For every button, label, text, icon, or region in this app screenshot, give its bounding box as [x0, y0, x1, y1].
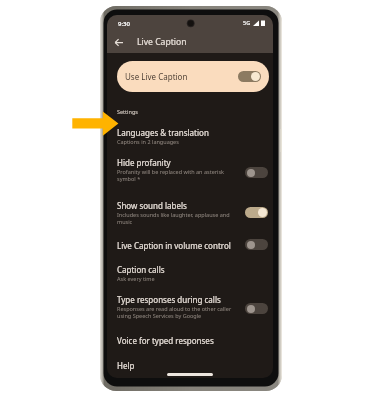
button[interactable]: Languages & translation — [107, 123, 273, 151]
button[interactable]: Type responses during calls — [107, 290, 273, 328]
button[interactable]: Toggle on — [238, 71, 261, 82]
staticText: Use Live Caption — [125, 71, 188, 82]
staticText: using Speech Services by Google — [117, 312, 202, 319]
button[interactable]: Hide profanity — [107, 153, 273, 191]
button[interactable]: Caption calls — [107, 260, 273, 288]
staticText: Ask every time — [117, 275, 155, 282]
staticText: 5G — [243, 19, 251, 26]
staticText: Responses are read aloud to the other ca… — [117, 305, 232, 312]
button[interactable]: Toggle off — [245, 303, 268, 314]
staticText: Live Caption — [137, 36, 187, 48]
staticText: Caption calls — [117, 264, 165, 275]
button[interactable]: Help — [107, 356, 273, 375]
button[interactable]: Back — [109, 33, 127, 51]
staticText: Help — [117, 360, 135, 371]
staticText: Settings — [117, 108, 138, 115]
staticText: Hide profanity — [117, 157, 171, 168]
staticText: Type responses during calls — [117, 294, 221, 305]
button[interactable]: Use Live Caption — [117, 61, 269, 92]
staticText: Languages & translation — [117, 127, 209, 138]
button[interactable]: Live Caption in volume control — [107, 236, 273, 255]
staticText: Live Caption in volume control — [117, 240, 231, 251]
button[interactable]: Show sound labels — [107, 196, 273, 234]
button[interactable]: Toggle on — [245, 207, 268, 218]
staticText: Voice for typed responses — [117, 335, 214, 346]
button[interactable]: Toggle off — [245, 239, 268, 250]
button[interactable]: Voice for typed responses — [107, 331, 273, 350]
staticText: symbol * — [117, 175, 141, 182]
button[interactable]: Toggle off — [245, 167, 268, 178]
staticText: Show sound labels — [117, 200, 187, 211]
staticText: Profanity will be replaced with an aster… — [117, 168, 225, 175]
staticText: Includes sounds like laughter, applause … — [117, 211, 230, 218]
staticText: 9:30 — [118, 20, 130, 28]
staticText: music — [117, 218, 133, 225]
staticText: Captions in 2 languages — [117, 138, 179, 145]
